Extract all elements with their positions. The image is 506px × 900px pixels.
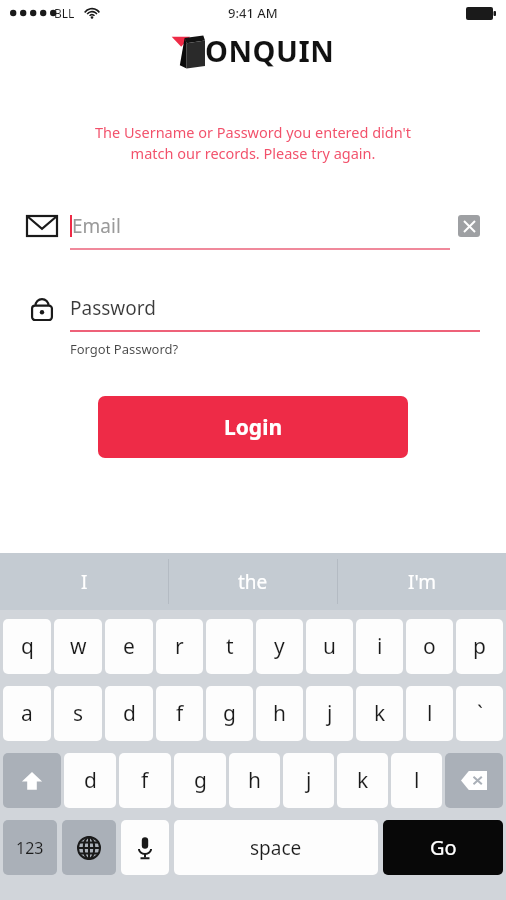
button[interactable]: o <box>406 619 453 674</box>
staticText: f <box>176 699 184 728</box>
staticText: y <box>274 632 285 661</box>
button[interactable]: s <box>54 686 102 741</box>
button[interactable]: i <box>356 619 403 674</box>
staticText: Password <box>70 295 156 321</box>
other: Password <box>26 293 58 323</box>
button[interactable]: e <box>105 619 153 674</box>
staticText: BLL <box>54 5 75 21</box>
button[interactable]: k <box>356 686 403 741</box>
button[interactable]: w <box>54 619 102 674</box>
staticText: t <box>226 632 234 661</box>
button[interactable]: f <box>119 753 171 808</box>
staticText: a <box>21 699 33 728</box>
staticText: f <box>141 766 149 795</box>
staticText: k <box>357 766 369 795</box>
button[interactable]: g <box>206 686 253 741</box>
staticText: ONQUIN <box>205 31 335 70</box>
button[interactable]: a <box>3 686 51 741</box>
other: Email <box>26 214 58 238</box>
button[interactable]: Voice input <box>121 820 169 875</box>
button[interactable]: k <box>337 753 388 808</box>
staticText: 123 <box>16 837 44 859</box>
button[interactable]: l <box>406 686 453 741</box>
button[interactable]: Go <box>383 820 503 875</box>
button[interactable]: Backspace <box>445 753 503 808</box>
staticText: Go <box>430 834 457 861</box>
staticText: s <box>73 699 84 728</box>
button[interactable]: Email <box>26 202 480 250</box>
staticText: 9:41 AM <box>228 4 278 22</box>
staticText: I'm <box>408 569 436 595</box>
button[interactable]: g <box>174 753 226 808</box>
staticText: Login <box>224 413 283 442</box>
button[interactable]: Password <box>26 284 480 332</box>
button[interactable]: f <box>156 686 203 741</box>
button[interactable]: j <box>306 686 353 741</box>
staticText: i <box>377 632 383 661</box>
button[interactable]: I <box>0 553 168 610</box>
staticText: ` <box>477 699 483 728</box>
button[interactable]: h <box>229 753 280 808</box>
button[interactable]: j <box>283 753 334 808</box>
button[interactable]: I'm <box>338 553 506 610</box>
staticText: j <box>327 699 333 728</box>
button[interactable]: u <box>306 619 353 674</box>
button[interactable]: t <box>206 619 253 674</box>
staticText: w <box>70 632 87 661</box>
button[interactable]: y <box>256 619 303 674</box>
button[interactable]: l <box>391 753 442 808</box>
staticText: space <box>250 835 302 861</box>
staticText: I <box>81 569 88 595</box>
button[interactable]: Shift <box>3 753 61 808</box>
button[interactable]: h <box>256 686 303 741</box>
staticText: h <box>273 699 286 728</box>
staticText: g <box>223 699 236 728</box>
staticText: q <box>21 632 34 661</box>
button[interactable]: Clear email <box>458 215 480 237</box>
staticText: k <box>374 699 386 728</box>
staticText: l <box>414 766 420 795</box>
staticText: p <box>473 632 486 661</box>
staticText: g <box>194 766 207 795</box>
staticText: d <box>123 699 136 728</box>
button[interactable]: the <box>169 553 337 610</box>
button[interactable]: d <box>105 686 153 741</box>
button[interactable]: space <box>174 820 378 875</box>
staticText: d <box>84 766 97 795</box>
staticText: l <box>427 699 433 728</box>
button[interactable]: q <box>3 619 51 674</box>
button[interactable]: Forgot Password? <box>70 340 179 358</box>
button[interactable]: 123 <box>3 820 57 875</box>
button[interactable]: ` <box>456 686 503 741</box>
staticText: the <box>238 569 268 595</box>
staticText: o <box>423 632 436 661</box>
button[interactable]: r <box>156 619 203 674</box>
staticText: e <box>123 632 135 661</box>
staticText: Forgot Password? <box>70 340 179 358</box>
staticText: Email <box>72 213 121 239</box>
staticText: j <box>306 766 312 795</box>
button[interactable]: Login <box>98 396 408 458</box>
staticText: The Username or Password you entered did… <box>24 122 482 164</box>
button[interactable]: p <box>456 619 503 674</box>
staticText: h <box>248 766 261 795</box>
staticText: u <box>323 632 336 661</box>
button[interactable]: Change keyboard language <box>62 820 116 875</box>
staticText: r <box>175 632 184 661</box>
button[interactable]: d <box>64 753 116 808</box>
